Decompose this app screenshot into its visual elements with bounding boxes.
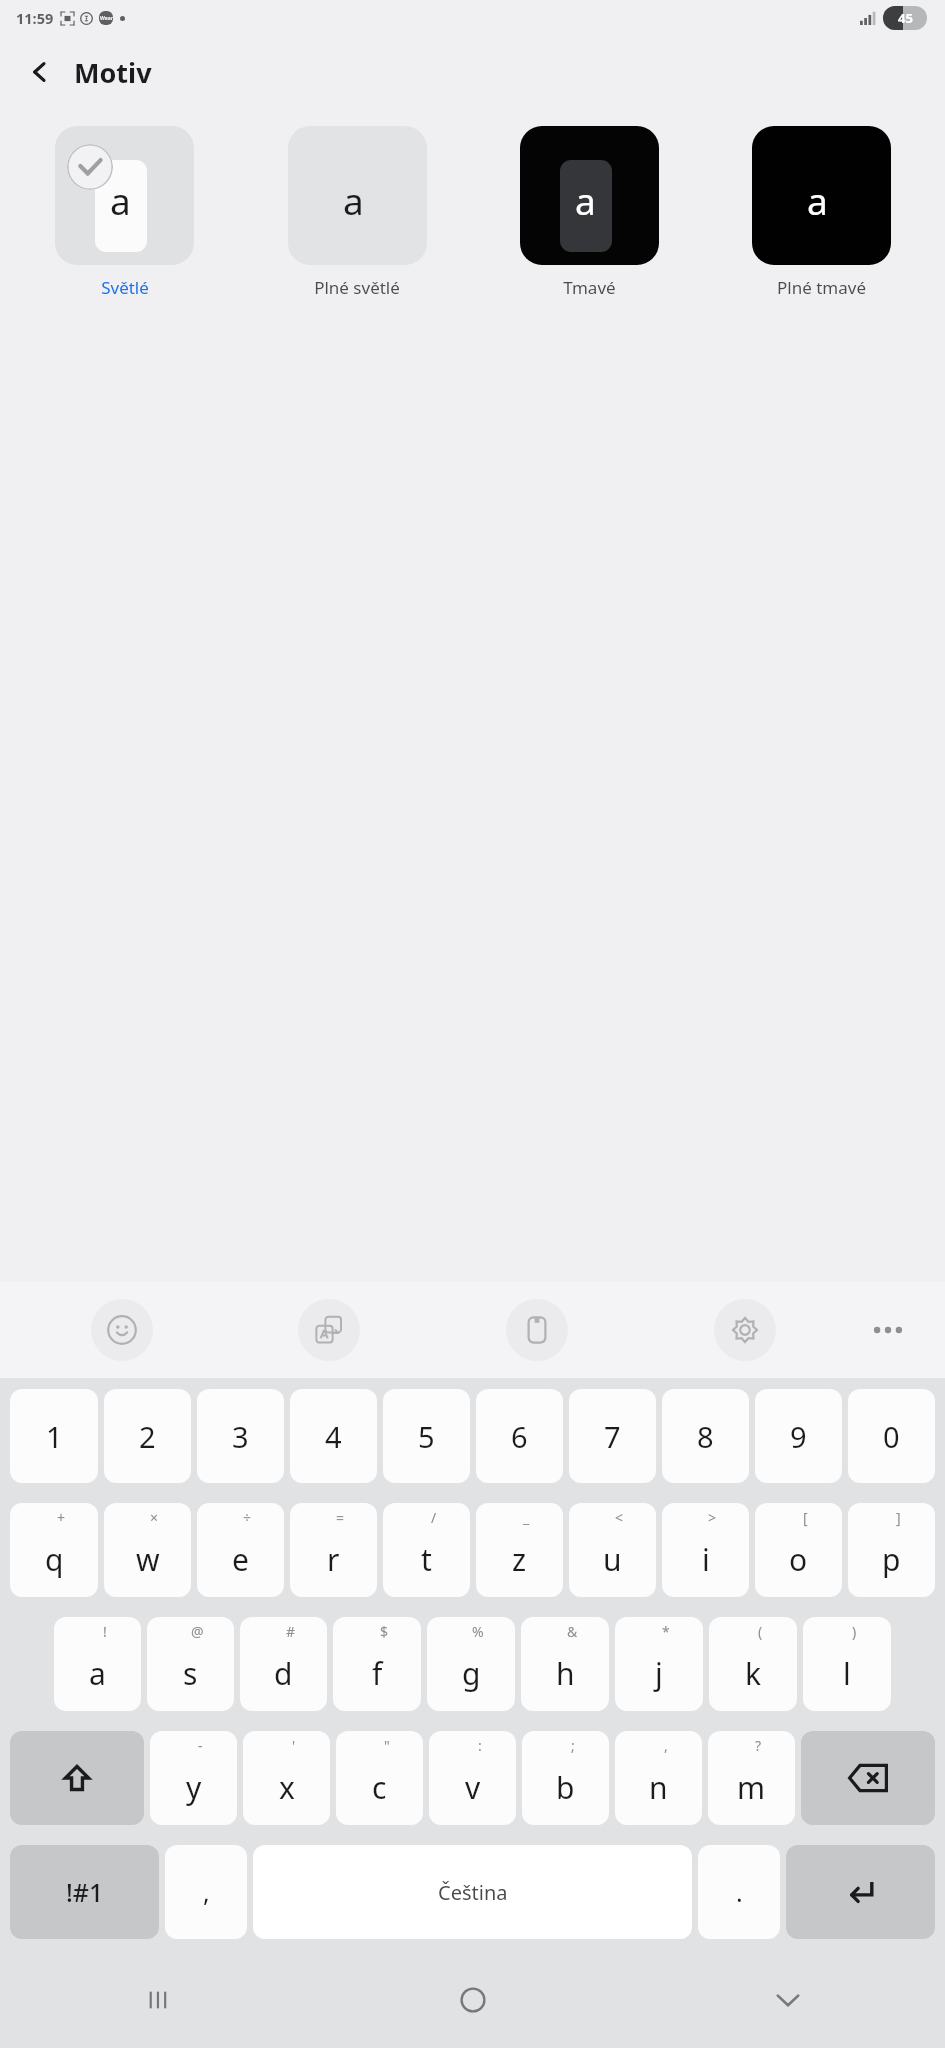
staticText: Světlé <box>101 276 149 299</box>
staticText: @ <box>191 1622 204 1641</box>
button[interactable]: 7 <box>569 1389 656 1483</box>
staticText: 8 <box>697 1417 714 1456</box>
button[interactable]: a <box>8 126 241 299</box>
button[interactable]: Backspace <box>801 1731 935 1825</box>
button[interactable]: ] <box>848 1503 935 1597</box>
staticText: f <box>372 1653 383 1694</box>
staticText: 1 <box>46 1417 63 1456</box>
staticText: m <box>737 1767 766 1808</box>
staticText: d <box>274 1653 293 1694</box>
staticText: c <box>372 1767 387 1808</box>
button[interactable]: Settings <box>714 1299 776 1361</box>
button[interactable]: : <box>429 1731 516 1825</box>
button[interactable]: _ <box>476 1503 563 1597</box>
button[interactable]: + <box>10 1503 98 1597</box>
button[interactable]: Emoji <box>91 1299 153 1361</box>
button[interactable]: = <box>290 1503 377 1597</box>
staticText: b <box>556 1767 575 1808</box>
button[interactable]: 1 <box>10 1389 98 1483</box>
staticText: u <box>603 1539 622 1580</box>
button[interactable]: 4 <box>290 1389 377 1483</box>
button[interactable]: ) <box>803 1617 891 1711</box>
button[interactable]: Translate <box>298 1299 360 1361</box>
staticText: & <box>567 1622 578 1641</box>
staticText: 2 <box>139 1417 156 1456</box>
button[interactable]: # <box>240 1617 327 1711</box>
button[interactable]: 2 <box>104 1389 191 1483</box>
staticText: q <box>45 1539 64 1580</box>
button[interactable]: Čeština <box>253 1845 692 1939</box>
button[interactable]: More options <box>849 1299 927 1361</box>
staticText: a <box>807 175 828 225</box>
button[interactable]: ÷ <box>197 1503 284 1597</box>
button[interactable]: ; <box>522 1731 609 1825</box>
button[interactable]: Clipboard <box>506 1299 568 1361</box>
button[interactable]: Enter <box>786 1845 935 1939</box>
staticText: 45 <box>898 9 913 27</box>
button[interactable]: [ <box>755 1503 842 1597</box>
button[interactable]: " <box>336 1731 423 1825</box>
button[interactable]: . <box>698 1845 780 1939</box>
button[interactable]: , <box>615 1731 702 1825</box>
staticText: v <box>465 1767 481 1808</box>
button[interactable]: Shift <box>10 1731 144 1825</box>
button[interactable]: !#1 <box>10 1845 159 1939</box>
button[interactable]: ' <box>243 1731 330 1825</box>
button[interactable]: Home <box>315 1952 630 2048</box>
staticText: 4 <box>325 1417 342 1456</box>
staticText: + <box>57 1508 66 1527</box>
button[interactable]: 8 <box>662 1389 749 1483</box>
button[interactable]: $ <box>333 1617 421 1711</box>
button[interactable]: Hide keyboard <box>630 1952 945 2048</box>
button[interactable]: a <box>705 126 937 299</box>
staticText: Motiv <box>74 54 152 91</box>
button[interactable]: × <box>104 1503 191 1597</box>
button[interactable]: Recents <box>0 1952 315 2048</box>
staticText: p <box>882 1539 901 1580</box>
staticText: × <box>150 1508 159 1527</box>
staticText: , <box>203 1875 210 1909</box>
button[interactable]: 3 <box>197 1389 284 1483</box>
staticText: l <box>843 1653 851 1694</box>
button[interactable]: % <box>427 1617 515 1711</box>
button[interactable]: 5 <box>383 1389 470 1483</box>
button[interactable]: ! <box>54 1617 141 1711</box>
staticText: Plné světlé <box>314 276 400 299</box>
button[interactable]: - <box>150 1731 237 1825</box>
staticText: # <box>286 1622 296 1641</box>
staticText: ! <box>103 1622 107 1641</box>
button[interactable]: , <box>165 1845 247 1939</box>
button[interactable]: & <box>521 1617 609 1711</box>
staticText: n <box>649 1767 668 1808</box>
button[interactable]: 9 <box>755 1389 842 1483</box>
button[interactable]: 6 <box>476 1389 563 1483</box>
button[interactable]: ? <box>708 1731 795 1825</box>
button[interactable]: * <box>615 1617 703 1711</box>
staticText: s <box>183 1653 198 1694</box>
staticText: % <box>472 1622 484 1641</box>
button[interactable]: ( <box>709 1617 797 1711</box>
staticText: k <box>745 1653 762 1694</box>
button[interactable]: > <box>662 1503 749 1597</box>
staticText: ? <box>755 1736 762 1755</box>
staticText: [ <box>803 1508 808 1527</box>
staticText: Wear <box>100 15 113 22</box>
button[interactable]: Back <box>14 46 66 98</box>
staticText: . <box>736 1875 743 1909</box>
staticText: 0 <box>883 1417 900 1456</box>
button[interactable]: @ <box>147 1617 234 1711</box>
staticText: < <box>615 1508 624 1527</box>
staticText: 11:59 <box>16 8 54 28</box>
button[interactable]: < <box>569 1503 656 1597</box>
button[interactable]: 0 <box>848 1389 935 1483</box>
button[interactable]: a <box>473 126 705 299</box>
staticText: Tmavé <box>563 276 616 299</box>
button[interactable]: a <box>241 126 473 299</box>
button[interactable]: / <box>383 1503 470 1597</box>
staticText: 5 <box>418 1417 435 1456</box>
staticText: 9 <box>790 1417 807 1456</box>
staticText: w <box>136 1539 160 1580</box>
staticText: y <box>186 1767 202 1808</box>
staticText: a <box>110 175 131 225</box>
staticText: z <box>512 1539 527 1580</box>
